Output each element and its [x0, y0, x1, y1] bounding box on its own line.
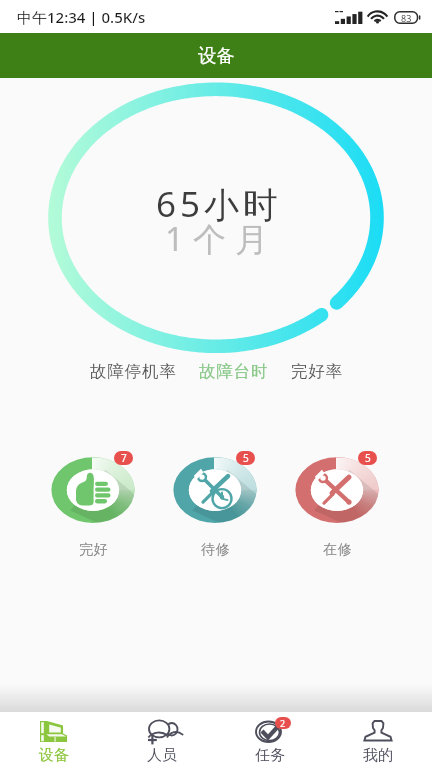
staticText: 任务: [255, 746, 285, 765]
button[interactable]: 我的: [324, 715, 432, 765]
button[interactable]: 5: [165, 450, 265, 560]
staticText: 2: [280, 717, 286, 729]
staticText: 中午12:34 | 0.5K/s: [17, 7, 146, 27]
button[interactable]: 7: [43, 450, 143, 560]
button[interactable]: 2: [216, 715, 324, 765]
staticText: 设备: [198, 44, 235, 67]
staticText: 故障台时: [199, 361, 269, 382]
staticText: 5: [365, 451, 371, 465]
staticText: 完好: [79, 541, 108, 559]
staticText: 故障停机率: [90, 361, 177, 382]
staticText: 完好率: [291, 361, 343, 382]
button[interactable]: 5: [287, 450, 387, 560]
button[interactable]: 完好率: [280, 356, 354, 387]
staticText: 设备: [39, 746, 69, 765]
staticText: 待修: [201, 541, 230, 559]
staticText: 在修: [323, 541, 352, 559]
staticText: 7: [121, 451, 127, 465]
staticText: 65小时: [156, 180, 283, 228]
staticText: 人员: [147, 746, 177, 765]
button[interactable]: 设备: [0, 715, 108, 765]
staticText: 1个月: [165, 216, 277, 261]
staticText: 我的: [363, 746, 393, 765]
button[interactable]: 故障停机率: [79, 356, 188, 387]
button[interactable]: 故障台时: [188, 356, 280, 387]
staticText: 5: [243, 451, 249, 465]
button[interactable]: 人员: [108, 715, 216, 765]
staticText: 83: [401, 12, 412, 24]
